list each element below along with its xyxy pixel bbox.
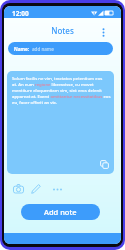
button[interactable]: More actions — [50, 182, 64, 196]
staticText: Notes — [4, 25, 121, 36]
button[interactable]: More options — [99, 23, 108, 41]
staticText: 12:00 — [12, 9, 29, 18]
staticText: Add note — [44, 207, 77, 217]
button[interactable]: Solum facilis ne vim, tractatos petentiu… — [7, 71, 114, 174]
button[interactable]: Take photo — [11, 182, 25, 196]
button[interactable]: Add note — [21, 204, 100, 220]
staticText: Solum facilis ne vim, tractatos petentiu… — [12, 75, 111, 105]
staticText: add name — [32, 46, 54, 52]
staticText: Name: — [14, 46, 29, 52]
button[interactable]: Edit — [29, 182, 43, 196]
button[interactable]: Name: — [8, 42, 113, 55]
